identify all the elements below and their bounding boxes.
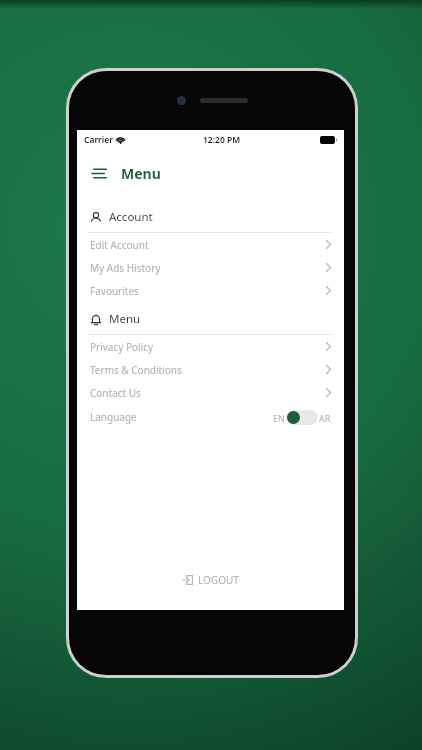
button[interactable]: Open navigation menu	[77, 160, 344, 186]
staticText: Account	[109, 209, 153, 225]
staticText: Language	[90, 410, 137, 424]
staticText: LOGOUT	[198, 573, 239, 587]
staticText: EN	[273, 412, 285, 424]
staticText: Terms & Conditions	[90, 363, 182, 377]
staticText: Edit Account	[90, 238, 149, 252]
button[interactable]: Edit Account	[77, 233, 344, 256]
button[interactable]: Language	[77, 404, 344, 430]
staticText: Menu	[121, 164, 161, 183]
staticText: Favourites	[90, 284, 139, 298]
staticText: Menu	[109, 311, 141, 327]
button[interactable]: Open navigation menu	[89, 163, 109, 183]
button[interactable]: Privacy Policy	[77, 335, 344, 358]
staticText: Privacy Policy	[90, 340, 154, 354]
button[interactable]: Favourites	[77, 279, 344, 302]
staticText: Contact Us	[90, 386, 141, 400]
staticText: Carrier	[84, 134, 113, 146]
staticText: My Ads History	[90, 261, 161, 275]
button[interactable]: Terms & Conditions	[77, 358, 344, 381]
button[interactable]: LOGOUT	[77, 568, 344, 592]
button[interactable]: Contact Us	[77, 381, 344, 404]
button[interactable]: My Ads History	[77, 256, 344, 279]
button[interactable]: Toggle language English Arabic	[286, 410, 318, 425]
staticText: 12:20 PM	[203, 134, 241, 146]
staticText: AR	[319, 412, 331, 424]
